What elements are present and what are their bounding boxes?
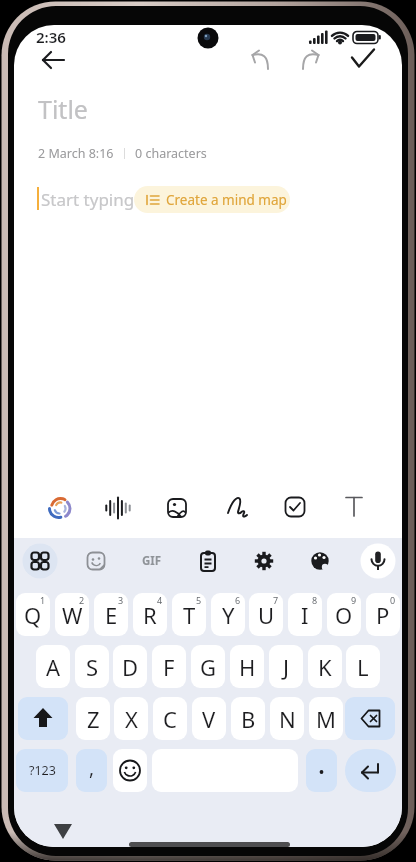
staticText: J xyxy=(283,652,290,682)
staticText: 0 xyxy=(390,594,396,606)
button[interactable] xyxy=(190,543,226,579)
button[interactable]: Create a mind map xyxy=(134,186,290,213)
button[interactable] xyxy=(157,488,197,528)
staticText: W xyxy=(62,600,83,630)
button[interactable] xyxy=(366,593,400,636)
staticText: M xyxy=(316,704,336,734)
button[interactable] xyxy=(306,749,337,792)
button[interactable] xyxy=(211,593,245,636)
staticText: A xyxy=(46,652,61,682)
button[interactable] xyxy=(18,697,68,740)
staticText: O xyxy=(335,600,353,630)
button[interactable] xyxy=(40,488,80,528)
staticText: U xyxy=(258,600,275,630)
button[interactable]: L xyxy=(346,645,380,688)
button[interactable] xyxy=(16,593,50,636)
button[interactable] xyxy=(249,593,283,636)
button[interactable]: Z xyxy=(76,697,110,740)
staticText: , xyxy=(89,755,95,781)
button[interactable]: C xyxy=(153,697,187,740)
button[interactable] xyxy=(217,487,257,527)
button[interactable] xyxy=(288,593,322,636)
staticText: Z xyxy=(87,704,100,734)
button[interactable] xyxy=(98,488,138,528)
staticText: C xyxy=(163,704,177,734)
staticText: 1 xyxy=(40,594,46,606)
staticText: 8 xyxy=(312,594,318,606)
button[interactable] xyxy=(94,593,128,636)
staticText: 0 characters xyxy=(135,145,207,162)
staticText: G xyxy=(200,652,217,682)
staticText: 2 xyxy=(79,594,85,606)
staticText: B xyxy=(241,704,256,734)
staticText: ?123 xyxy=(29,762,56,779)
staticText: D xyxy=(122,652,139,682)
button[interactable] xyxy=(49,819,77,843)
button[interactable]: B xyxy=(231,697,265,740)
button[interactable] xyxy=(348,46,378,76)
button[interactable]: G xyxy=(191,645,225,688)
staticText: Title xyxy=(38,92,88,126)
staticText: F xyxy=(163,652,175,682)
button[interactable]: V xyxy=(192,697,226,740)
button[interactable]: F xyxy=(152,645,186,688)
button[interactable] xyxy=(297,46,327,76)
staticText: K xyxy=(318,652,332,682)
button[interactable] xyxy=(113,749,147,792)
button[interactable]: , xyxy=(76,749,107,792)
button[interactable]: A xyxy=(36,645,70,688)
button[interactable] xyxy=(345,749,396,792)
button[interactable] xyxy=(133,593,167,636)
staticText: S xyxy=(86,652,99,682)
staticText: E xyxy=(105,600,118,630)
button[interactable]: J xyxy=(269,645,303,688)
button[interactable] xyxy=(246,543,282,579)
button[interactable] xyxy=(22,543,58,579)
staticText: T xyxy=(183,600,196,630)
staticText: Q xyxy=(24,600,42,630)
button[interactable]: K xyxy=(308,645,342,688)
staticText: I xyxy=(301,600,309,630)
button[interactable] xyxy=(244,46,274,76)
staticText: N xyxy=(279,704,296,734)
button[interactable] xyxy=(172,593,206,636)
staticText: P xyxy=(376,600,390,630)
button[interactable] xyxy=(360,543,396,579)
staticText: 2:36 xyxy=(36,27,66,47)
button[interactable]: H xyxy=(230,645,264,688)
staticText: 9 xyxy=(351,594,357,606)
button[interactable]: N xyxy=(270,697,304,740)
staticText: 5 xyxy=(196,594,202,606)
button[interactable] xyxy=(345,697,395,740)
staticText: R xyxy=(143,600,157,630)
staticText: 2 March 8:16 xyxy=(38,145,114,162)
button[interactable] xyxy=(275,487,315,527)
button[interactable] xyxy=(55,593,89,636)
button[interactable] xyxy=(334,487,374,527)
button[interactable]: S xyxy=(75,645,109,688)
button[interactable] xyxy=(327,593,361,636)
button[interactable]: GIF xyxy=(134,543,170,579)
staticText: V xyxy=(202,704,216,734)
staticText: X xyxy=(125,704,138,734)
staticText: 6 xyxy=(235,594,241,606)
staticText: GIF xyxy=(142,553,162,569)
staticText: Start typing xyxy=(41,188,135,211)
staticText: L xyxy=(357,652,369,682)
staticText: 3 xyxy=(118,594,124,606)
button[interactable]: M xyxy=(309,697,343,740)
staticText: 7 xyxy=(273,594,279,606)
staticText: H xyxy=(239,652,256,682)
staticText: 4 xyxy=(157,594,163,606)
button[interactable]: ?123 xyxy=(16,749,68,792)
button[interactable]: X xyxy=(114,697,148,740)
button[interactable] xyxy=(302,543,338,579)
button[interactable]: D xyxy=(113,645,147,688)
staticText: Y xyxy=(222,600,235,630)
staticText: Create a mind map xyxy=(166,191,287,209)
button[interactable] xyxy=(78,543,114,579)
button[interactable] xyxy=(39,45,69,75)
